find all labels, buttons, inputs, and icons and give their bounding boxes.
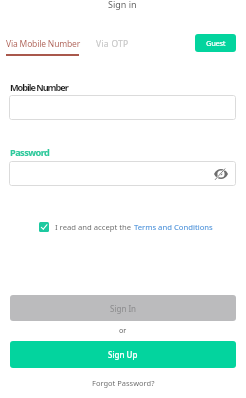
button[interactable]: Sign Up xyxy=(10,341,236,368)
staticText: Sign in xyxy=(108,0,137,10)
staticText: Guest xyxy=(206,38,226,48)
button[interactable]: Via Mobile Number xyxy=(4,36,82,54)
button[interactable]: Accept terms xyxy=(39,222,49,232)
staticText: I read and accept the xyxy=(55,222,134,232)
staticText: or xyxy=(119,325,127,335)
button[interactable] xyxy=(9,95,236,120)
button[interactable]: Guest xyxy=(195,34,236,52)
staticText: Sign In xyxy=(110,303,137,314)
button[interactable]: Via OTP xyxy=(94,36,132,54)
button[interactable]: Sign In xyxy=(10,295,236,321)
staticText: Via Mobile Number xyxy=(6,38,81,50)
staticText: Sign Up xyxy=(108,349,138,360)
button[interactable]: Terms and Conditions xyxy=(134,222,213,232)
button[interactable]: Show password xyxy=(9,161,236,186)
staticText: Mobile Number xyxy=(10,81,68,94)
button[interactable]: Forgot Password? xyxy=(92,378,155,388)
staticText: Password xyxy=(10,146,50,159)
button[interactable]: Show password xyxy=(213,166,229,182)
staticText: Via OTP xyxy=(96,38,129,50)
